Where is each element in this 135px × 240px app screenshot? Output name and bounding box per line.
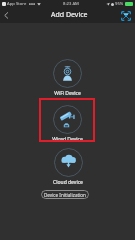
button[interactable]: Cloud device <box>50 148 86 185</box>
button[interactable]: WiFi Device <box>50 59 85 96</box>
staticText: Device Initialization <box>44 192 86 198</box>
button[interactable]: Scan QR code <box>121 11 131 21</box>
button[interactable]: Wired Device <box>49 105 86 142</box>
staticText: WiFi Device <box>54 90 81 97</box>
staticText: Wired Device <box>52 136 83 143</box>
staticText: App Store <box>7 1 27 7</box>
button[interactable]: Device Initialization <box>41 190 89 199</box>
staticText: 95% <box>115 1 124 7</box>
button[interactable]: Back <box>0 9 14 23</box>
staticText: 8:23 AM <box>63 1 79 7</box>
staticText: Cloud device <box>53 179 83 186</box>
staticText: Add Device <box>51 10 88 20</box>
